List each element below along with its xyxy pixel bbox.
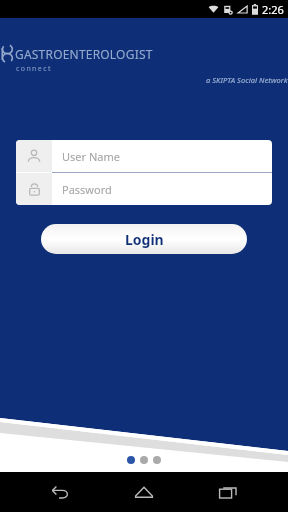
staticText: GASTROENTEROLOGIST xyxy=(15,46,153,62)
button[interactable]: Login xyxy=(41,224,247,254)
button[interactable]: Home xyxy=(120,472,168,512)
staticText: Password xyxy=(62,182,112,197)
staticText: User Name xyxy=(62,149,120,164)
staticText: a SKIPTA Social Network xyxy=(206,75,288,85)
button[interactable]: Back xyxy=(36,472,84,512)
button[interactable]: User Name xyxy=(16,140,272,172)
staticText: 2:26 xyxy=(262,2,284,17)
staticText: Login xyxy=(125,230,164,249)
button[interactable]: Password xyxy=(16,173,272,205)
button[interactable]: Recent apps xyxy=(204,472,252,512)
staticText: connect xyxy=(16,64,52,74)
